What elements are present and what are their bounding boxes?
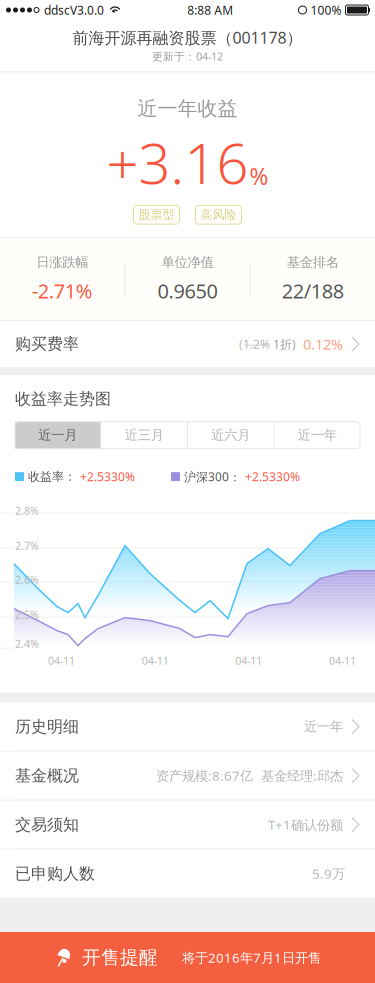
staticText: 历史明细 <box>15 717 79 736</box>
button[interactable]: 开售提醒 <box>0 932 375 983</box>
staticText: ( <box>239 336 243 352</box>
button[interactable]: 近一月 <box>15 422 100 449</box>
staticText: 8:88 AM <box>187 2 233 18</box>
staticText: 将于2016年7月1日开售 <box>182 949 321 966</box>
staticText: 股票型 <box>138 207 174 222</box>
staticText: 基金排名 <box>287 254 339 270</box>
staticText: 2.7% <box>15 539 39 553</box>
staticText: 近六月 <box>211 427 250 443</box>
staticText: 近一年 <box>304 718 343 735</box>
staticText: 基金概况 <box>15 766 79 785</box>
staticText: 近一年收益 <box>137 96 237 121</box>
staticText: 1折) <box>270 336 296 352</box>
staticText: 近一年 <box>298 427 337 443</box>
button[interactable]: 已申购人数 <box>0 850 375 898</box>
button[interactable]: 近三月 <box>101 422 187 449</box>
staticText: 22/188 <box>282 277 344 304</box>
staticText: 04-11 <box>235 654 262 668</box>
staticText: 更新于：04-12 <box>152 49 223 63</box>
staticText: 04-11 <box>48 654 75 668</box>
staticText: 购买费率 <box>15 334 79 354</box>
staticText: 04-11 <box>329 654 356 668</box>
staticText: +2.5330% <box>245 469 300 485</box>
staticText: % <box>249 161 268 191</box>
staticText: 近三月 <box>125 427 164 443</box>
staticText: 已申购人数 <box>15 864 95 883</box>
staticText: 收益率走势图 <box>15 389 111 409</box>
staticText: 2.8% <box>15 504 39 518</box>
button[interactable]: 近六月 <box>188 422 273 449</box>
staticText: 2.4% <box>15 636 39 651</box>
staticText: 近一月 <box>38 427 77 443</box>
staticText: -2.71% <box>32 277 93 304</box>
staticText: 资产规模:8.67亿 基金经理:邱杰 <box>156 767 343 784</box>
staticText: 单位净值 <box>161 254 213 270</box>
staticText: 04-11 <box>142 654 169 668</box>
staticText: 交易须知 <box>15 815 79 834</box>
button[interactable]: 基金概况 <box>0 752 375 800</box>
staticText: 沪深300： <box>184 469 241 485</box>
staticText: +2.5330% <box>80 469 135 485</box>
staticText: 1.2% <box>243 336 270 352</box>
staticText: ddscV3.0.0 <box>44 2 104 18</box>
button[interactable]: 交易须知 <box>0 801 375 849</box>
staticText: 0.9650 <box>157 277 217 304</box>
staticText: 日涨跌幅 <box>36 254 88 270</box>
staticText: 5.9万 <box>312 865 345 882</box>
staticText: 开售提醒 <box>82 946 158 969</box>
staticText: 0.12% <box>303 334 343 354</box>
staticText: T+1确认份额 <box>268 816 343 833</box>
staticText: 2.6% <box>15 573 39 587</box>
staticText: 收益率： <box>28 469 76 484</box>
staticText: +3.16 <box>106 125 248 199</box>
staticText: 100% <box>310 2 341 18</box>
button[interactable]: 购买费率 <box>0 321 375 367</box>
button[interactable]: 历史明细 <box>0 703 375 751</box>
staticText: 前海开源再融资股票（001178） <box>72 27 302 48</box>
staticText: 2.5% <box>15 608 39 622</box>
button[interactable]: 近一年 <box>274 422 360 449</box>
staticText: 高风险 <box>200 207 236 222</box>
